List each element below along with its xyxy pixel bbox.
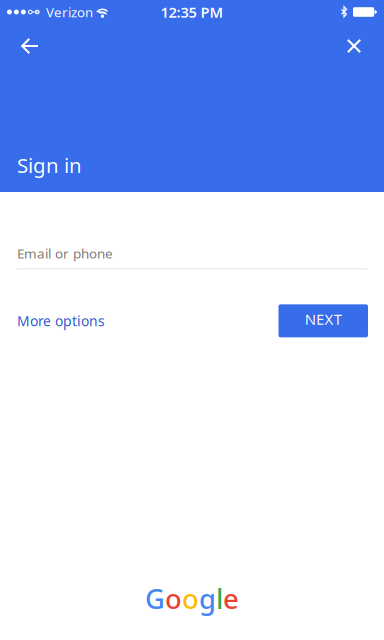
staticText: NEXT (305, 309, 342, 329)
button[interactable]: More options (17, 311, 105, 330)
button[interactable]: NEXT (278, 304, 368, 337)
staticText: l (216, 580, 223, 617)
staticText: Sign in (17, 151, 82, 179)
staticText: o (182, 580, 199, 617)
staticText: More options (17, 311, 105, 330)
staticText: Verizon (46, 3, 93, 21)
staticText: e (223, 580, 239, 617)
staticText: g (199, 580, 216, 617)
staticText: G (145, 580, 165, 617)
staticText: Email or phone (17, 244, 113, 262)
button[interactable]: Back (7, 24, 53, 68)
staticText: 12:35 PM (160, 2, 223, 22)
button[interactable]: Close (331, 24, 377, 68)
staticText: o (165, 580, 182, 617)
